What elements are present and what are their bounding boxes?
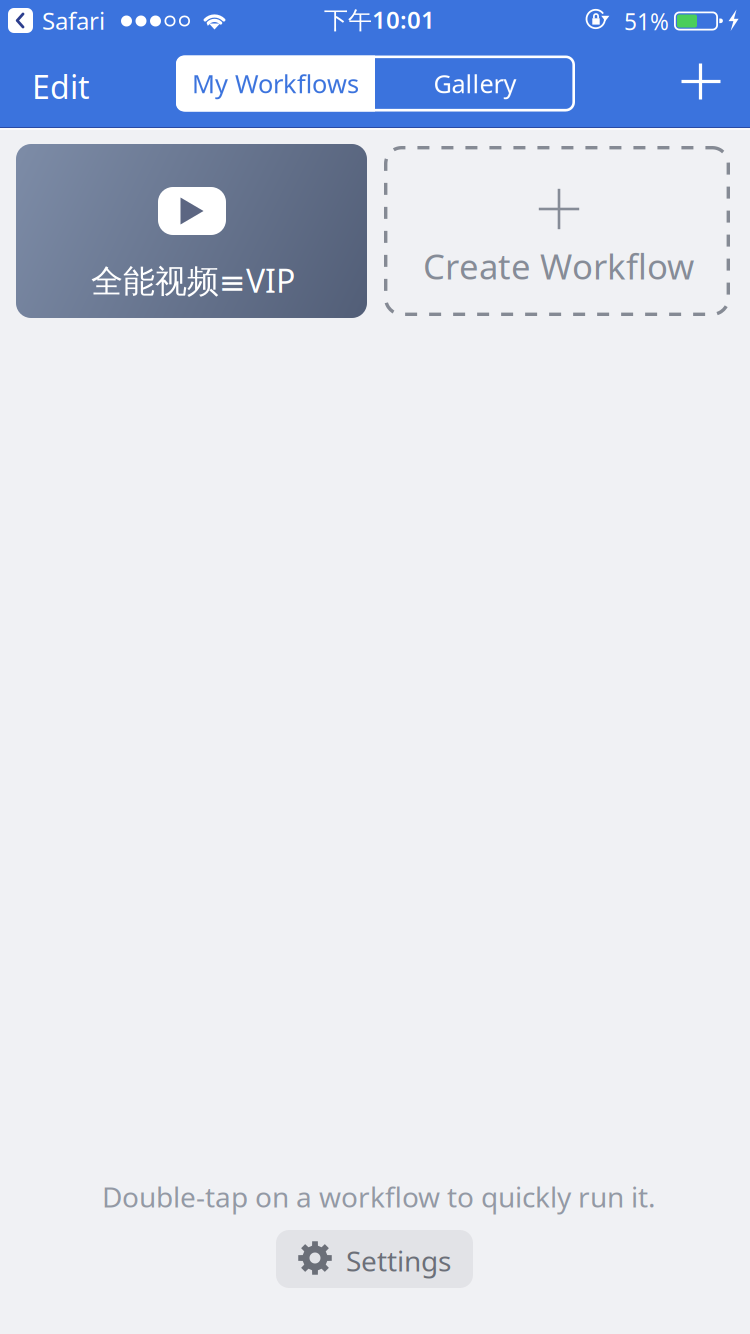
staticText: Safari bbox=[42, 5, 105, 36]
staticText: 51% bbox=[624, 6, 669, 37]
staticText: Settings bbox=[346, 1242, 451, 1279]
button[interactable]: My Workflows bbox=[176, 55, 375, 111]
button[interactable]: 全能视频≡VIP bbox=[16, 144, 367, 318]
staticText: Edit bbox=[32, 65, 90, 108]
button[interactable]: Edit bbox=[32, 51, 118, 121]
button[interactable]: Gallery bbox=[375, 55, 575, 111]
button[interactable]: Add workflow bbox=[666, 46, 736, 116]
staticText: 全能视频≡VIP bbox=[91, 259, 295, 301]
staticText: 下午10:01 bbox=[324, 3, 435, 35]
button[interactable]: Back to Safari bbox=[8, 5, 105, 35]
button[interactable]: Settings bbox=[276, 1230, 473, 1288]
staticText: Double-tap on a workflow to quickly run … bbox=[102, 1178, 656, 1215]
staticText: My Workflows bbox=[192, 67, 359, 100]
staticText: Gallery bbox=[433, 67, 516, 100]
staticText: Create Workflow bbox=[423, 243, 694, 289]
button[interactable]: Create Workflow bbox=[384, 146, 730, 316]
